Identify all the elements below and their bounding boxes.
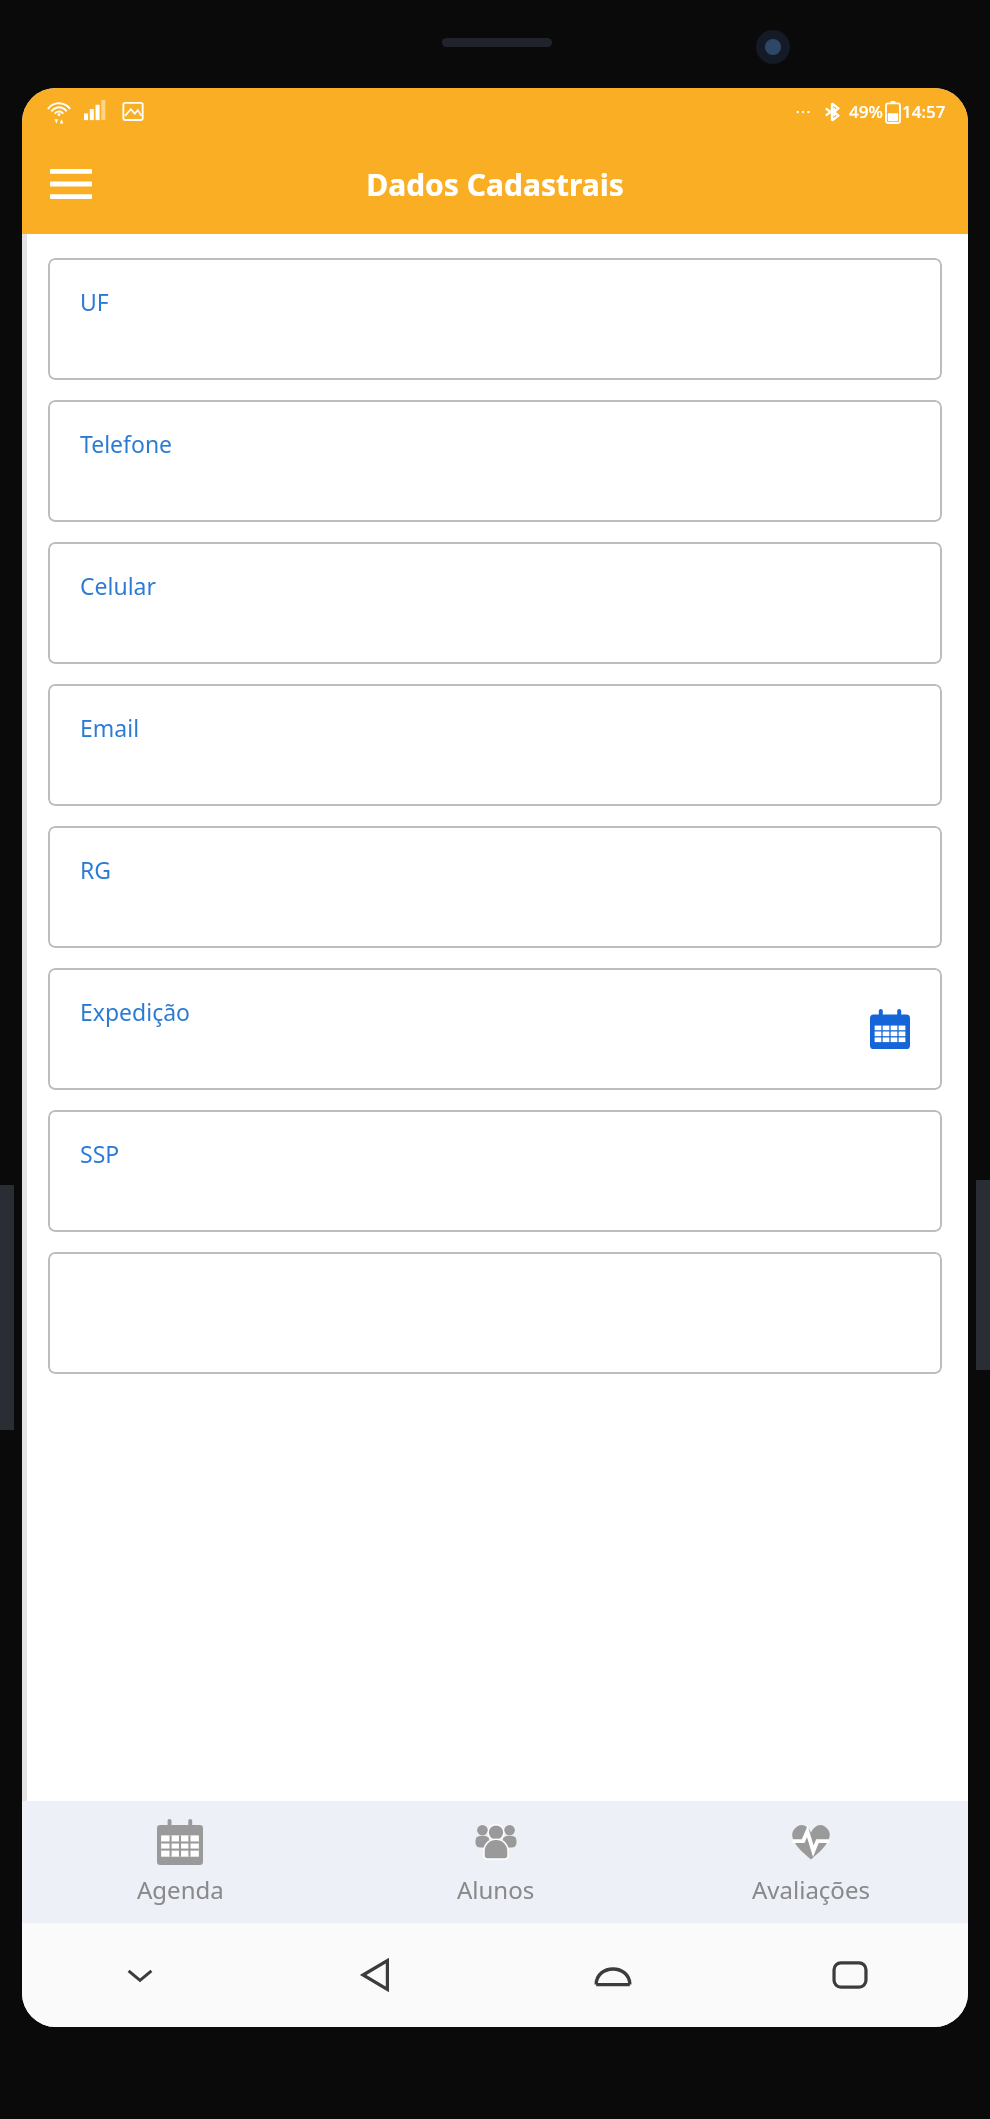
button[interactable]: Home [494, 1923, 731, 2027]
button[interactable]: Avaliações [653, 1801, 968, 1923]
staticText: Expedição [80, 996, 191, 1027]
button[interactable]: Email [48, 684, 942, 806]
staticText: Dados Cadastrais [366, 164, 624, 205]
button[interactable]: Back [258, 1923, 494, 2027]
button[interactable] [48, 1252, 942, 1374]
button[interactable]: Pick date [864, 1003, 916, 1055]
button[interactable]: Expedição [48, 968, 942, 1090]
button[interactable]: Hide keyboard [22, 1923, 258, 2027]
button[interactable]: Telefone [48, 400, 942, 522]
button[interactable]: Agenda [22, 1801, 338, 1923]
button[interactable]: UF [48, 258, 942, 380]
staticText: ⋯ [795, 102, 811, 121]
staticText: Celular [80, 570, 156, 601]
button[interactable]: SSP [48, 1110, 942, 1232]
staticText: Avaliações [752, 1873, 870, 1906]
button[interactable]: Open navigation menu [40, 153, 102, 215]
staticText: 14:57 [902, 100, 946, 123]
button[interactable]: RG [48, 826, 942, 948]
button[interactable]: Recent apps [731, 1923, 968, 2027]
staticText: Alunos [457, 1873, 535, 1906]
button[interactable]: Celular [48, 542, 942, 664]
staticText: SSP [80, 1138, 120, 1169]
staticText: RG [80, 854, 112, 885]
staticText: UF [80, 286, 109, 317]
staticText: Email [80, 712, 140, 743]
button[interactable]: Alunos [338, 1801, 653, 1923]
staticText: Agenda [137, 1873, 224, 1906]
staticText: Telefone [80, 428, 173, 459]
staticText: 49% [849, 100, 883, 123]
